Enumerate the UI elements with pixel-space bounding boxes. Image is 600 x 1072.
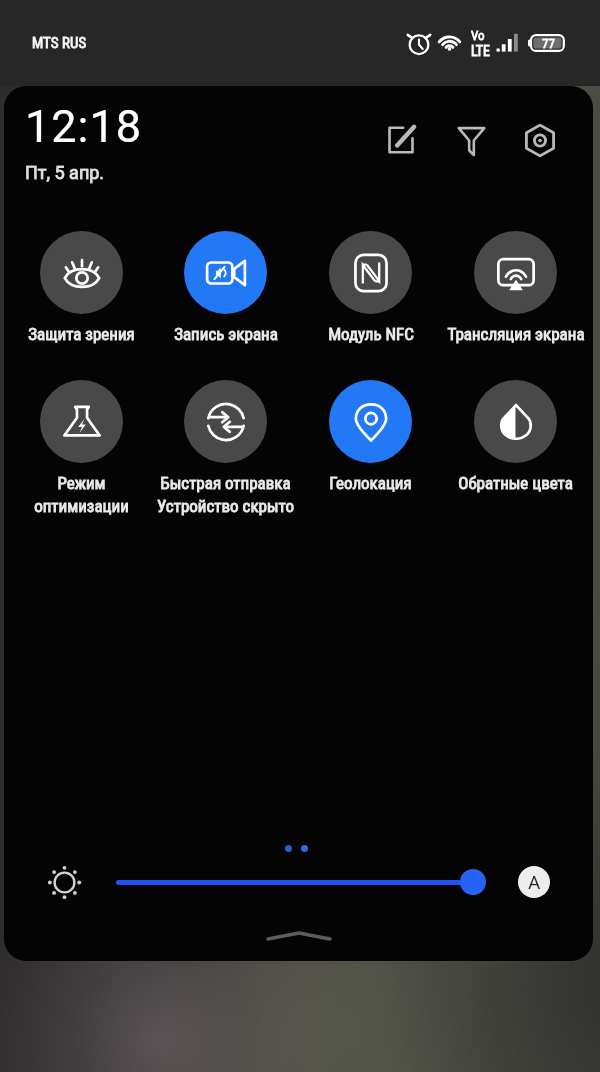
button[interactable]: Режим оптимизации	[9, 380, 153, 516]
staticText: Трансляция экрана	[447, 324, 585, 344]
staticText: Геолокация	[329, 473, 412, 493]
staticText: 77	[542, 36, 555, 51]
staticText: Быстрая отправка Устройство скрыто	[157, 473, 294, 516]
button[interactable]: Модуль NFC	[298, 231, 443, 344]
button[interactable]: Трансляция экрана	[443, 231, 588, 344]
button[interactable]: Геолокация	[298, 380, 443, 493]
button[interactable]: Запись экрана	[153, 231, 298, 344]
staticText: Пт, 5 апр.	[25, 162, 105, 183]
staticText: A	[528, 871, 541, 893]
staticText: LTE	[471, 43, 491, 59]
button[interactable]: Обратные цвета	[443, 380, 588, 493]
button[interactable]: Edit tiles	[378, 117, 424, 163]
staticText: Запись экрана	[174, 324, 278, 344]
staticText: Модуль NFC	[328, 324, 414, 344]
staticText: Vo	[471, 28, 485, 43]
button[interactable]: Settings	[517, 117, 563, 163]
staticText: Обратные цвета	[458, 473, 573, 493]
button[interactable]: Быстрая отправка Устройство скрыто	[153, 380, 298, 516]
staticText: 12:18	[25, 100, 143, 153]
staticText: Защита зрения	[28, 324, 135, 344]
staticText: MTS RUS	[32, 34, 87, 52]
button[interactable]: Auto brightness	[518, 866, 550, 898]
button[interactable]: Filter	[448, 117, 494, 163]
button[interactable]: Защита зрения	[9, 231, 153, 344]
staticText: Режим оптимизации	[34, 473, 129, 516]
